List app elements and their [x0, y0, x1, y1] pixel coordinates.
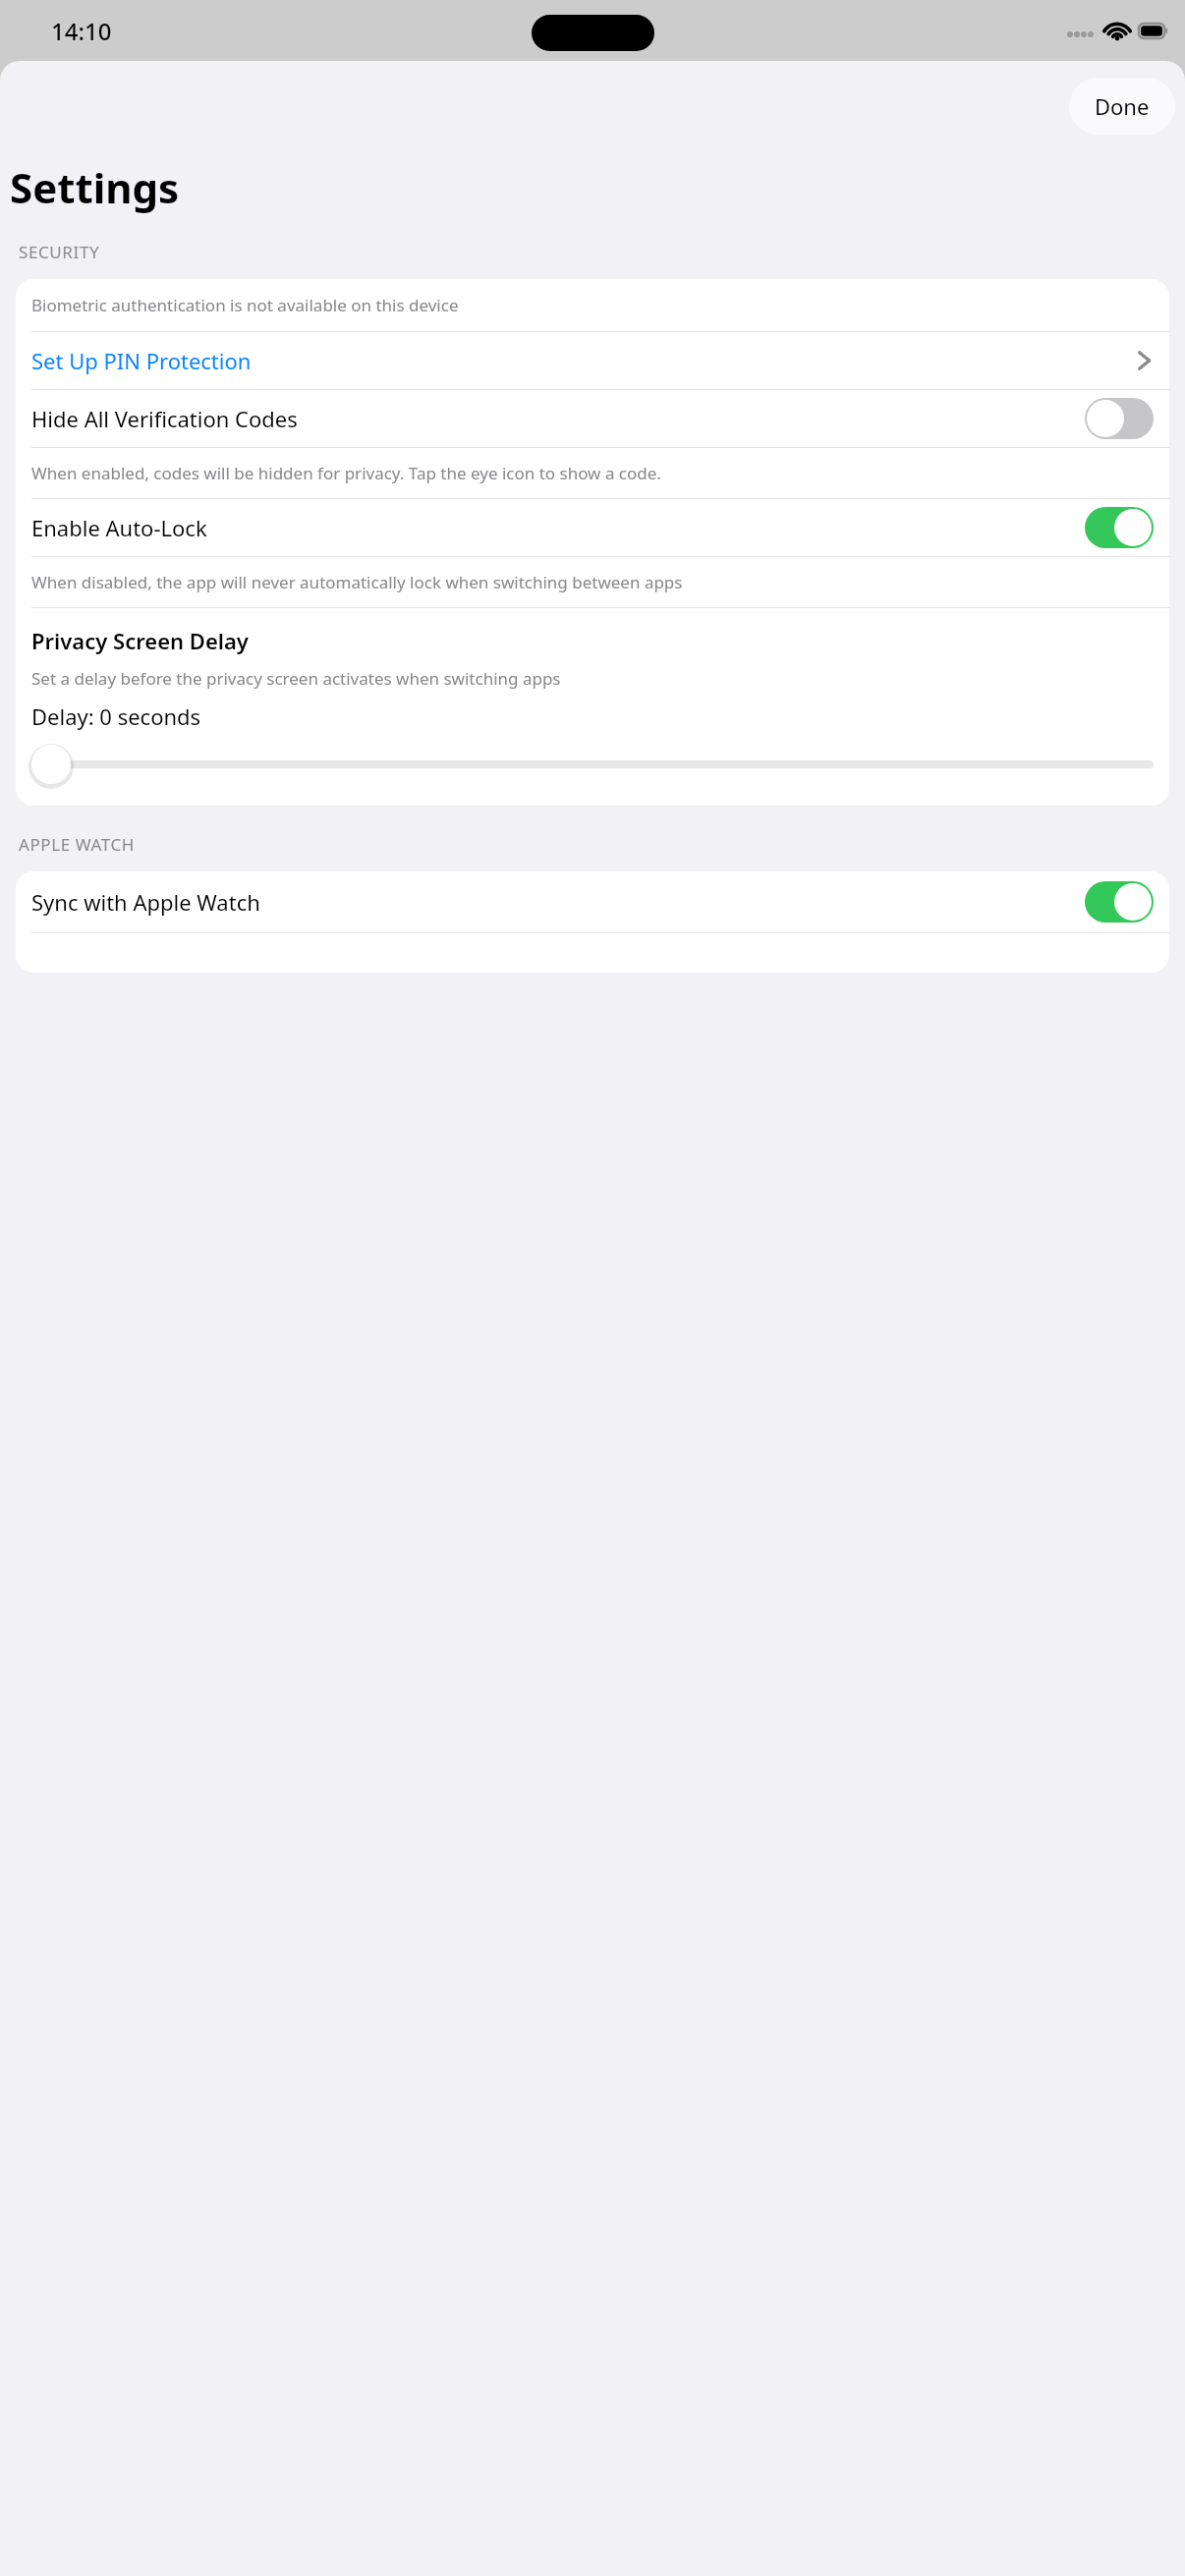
button[interactable]: Done — [1069, 78, 1175, 135]
staticText: Privacy Screen Delay — [31, 626, 249, 655]
button[interactable]: Off — [1085, 398, 1154, 439]
staticText: Done — [1095, 91, 1150, 121]
staticText: Delay: 0 seconds — [31, 701, 201, 731]
other: Open — [1134, 348, 1154, 373]
staticText: Settings — [10, 159, 180, 215]
button[interactable]: Enable Auto-Lock — [16, 499, 1169, 556]
button[interactable]: Delay slider — [31, 745, 1154, 784]
staticText: APPLE WATCH — [19, 833, 136, 856]
staticText: 14:10 — [51, 15, 112, 47]
button[interactable]: Hide All Verification Codes — [16, 390, 1169, 447]
staticText: Hide All Verification Codes — [31, 404, 298, 433]
staticText: Sync with Apple Watch — [31, 887, 260, 917]
button[interactable]: Sync with Apple Watch — [16, 871, 1169, 932]
staticText: Set a delay before the privacy screen ac… — [31, 667, 561, 690]
staticText: When enabled, codes will be hidden for p… — [31, 462, 661, 484]
button[interactable]: On — [1085, 507, 1154, 548]
staticText: Set Up PIN Protection — [31, 346, 252, 375]
button[interactable]: On — [1085, 881, 1154, 923]
staticText: SECURITY — [19, 241, 100, 263]
staticText: Biometric authentication is not availabl… — [31, 294, 459, 316]
staticText: When disabled, the app will never automa… — [31, 571, 683, 593]
staticText: Enable Auto-Lock — [31, 513, 207, 542]
button[interactable]: Set Up PIN Protection — [16, 332, 1169, 389]
